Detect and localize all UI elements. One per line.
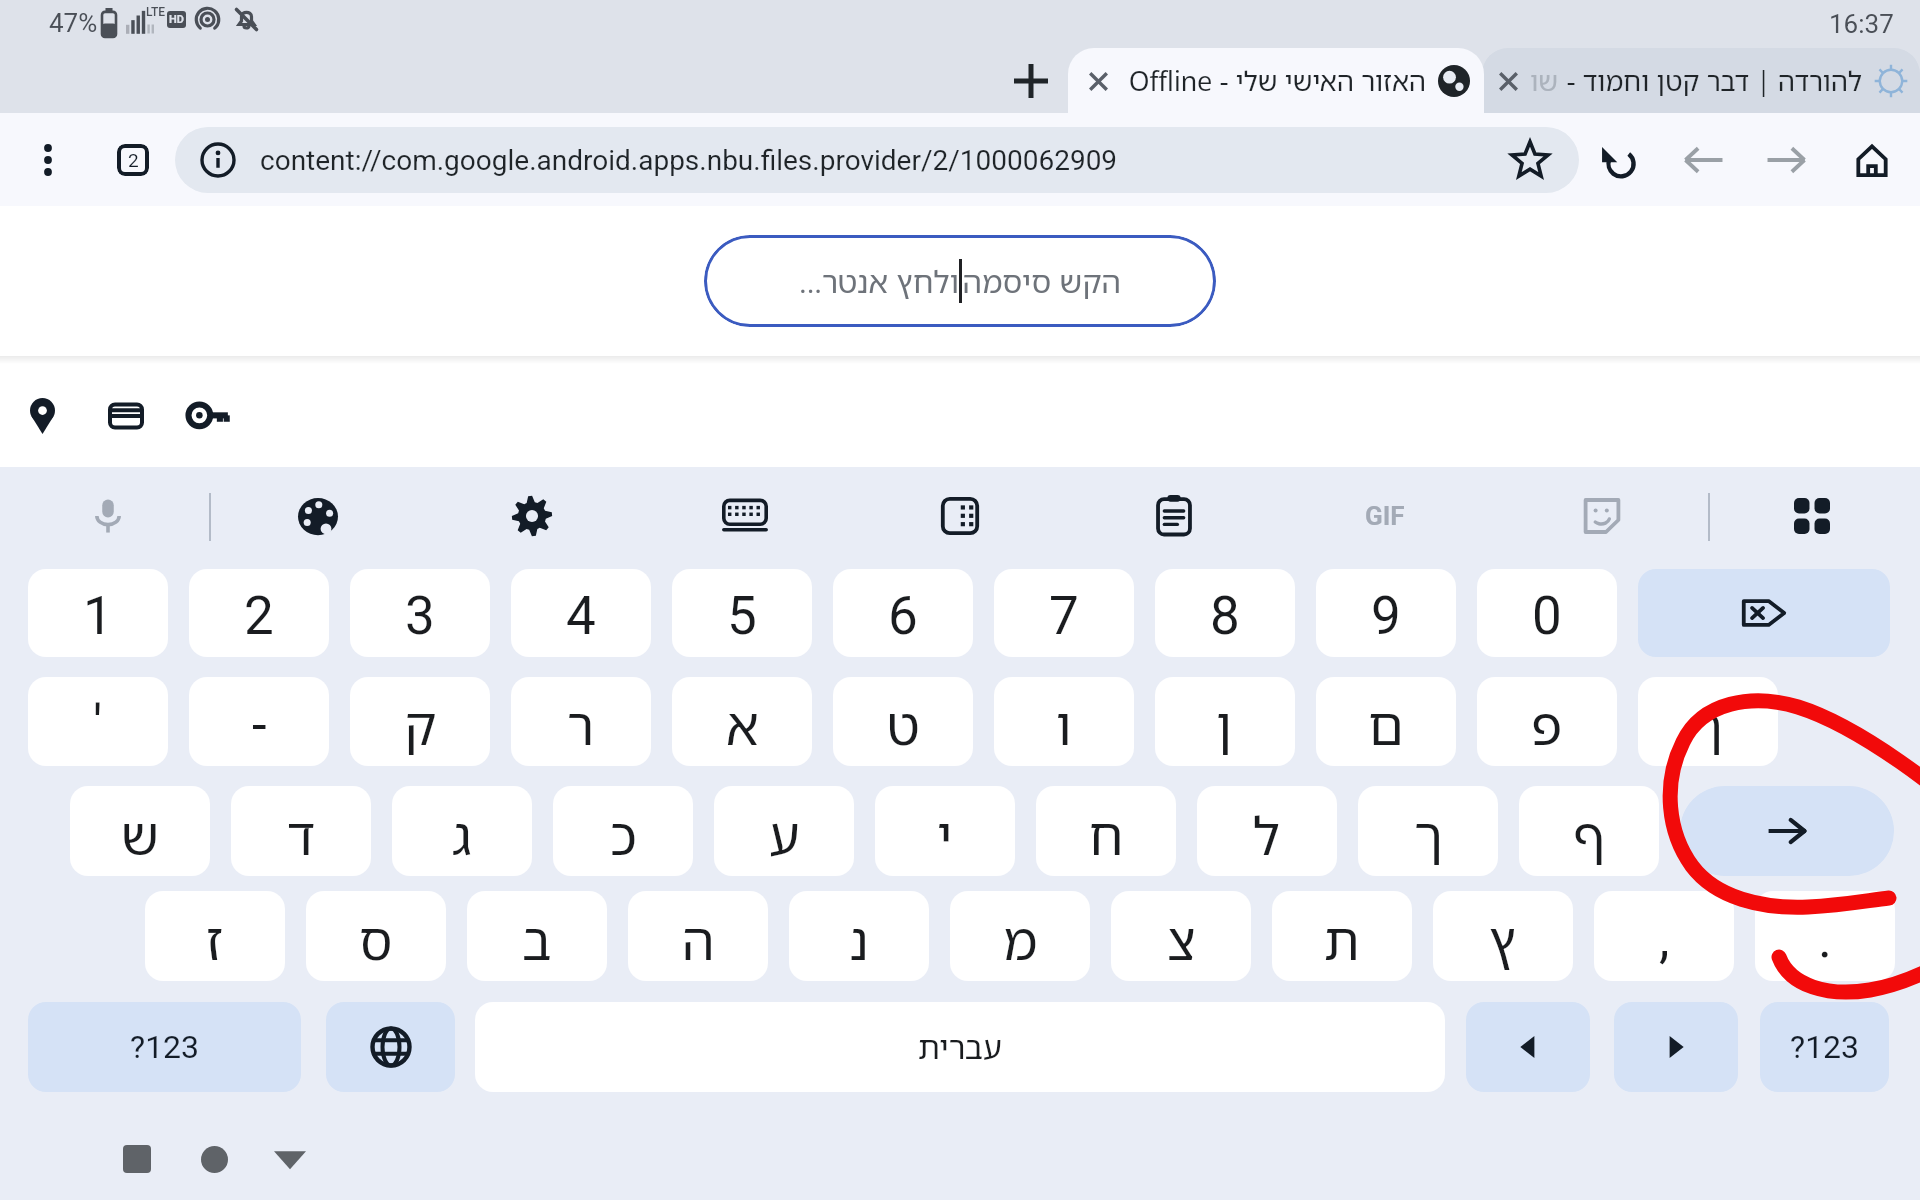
- button[interactable]: ?123: [1760, 1002, 1889, 1092]
- staticText: ג: [452, 799, 472, 870]
- button[interactable]: Floating keyboard: [714, 467, 776, 565]
- button[interactable]: 0: [1477, 569, 1617, 657]
- button[interactable]: Passwords: [180, 386, 240, 446]
- button[interactable]: .: [1755, 891, 1895, 981]
- button[interactable]: Hide keyboard: [260, 1129, 320, 1189]
- button[interactable]: More options: [1782, 467, 1842, 565]
- button[interactable]: 4: [511, 569, 651, 657]
- staticText: 0: [1532, 585, 1562, 647]
- staticText: ך: [1694, 689, 1723, 760]
- staticText: GIF: [1365, 501, 1405, 531]
- button[interactable]: ,: [1594, 891, 1734, 981]
- button[interactable]: Home: [184, 1129, 244, 1189]
- staticText: מ: [1003, 904, 1038, 975]
- button[interactable]: ר: [511, 677, 651, 766]
- button[interactable]: 6: [833, 569, 973, 657]
- button[interactable]: ': [28, 677, 168, 766]
- button[interactable]: ?123: [28, 1002, 301, 1092]
- button[interactable]: ח: [1036, 786, 1176, 876]
- button[interactable]: הקש סיסמה: [704, 235, 1216, 327]
- button[interactable]: ך: [1638, 677, 1778, 766]
- button[interactable]: מ: [950, 891, 1090, 981]
- button[interactable]: ט: [833, 677, 973, 766]
- button[interactable]: Reload: [1589, 113, 1647, 206]
- button[interactable]: צ: [1111, 891, 1251, 981]
- staticText: ,: [1659, 908, 1670, 970]
- button[interactable]: Payment method: [96, 386, 156, 446]
- button[interactable]: ת: [1272, 891, 1412, 981]
- button[interactable]: Address: [12, 386, 72, 446]
- button[interactable]: 5: [672, 569, 812, 657]
- button[interactable]: GIF: [1348, 467, 1422, 565]
- staticText: ק: [404, 689, 437, 760]
- button[interactable]: -: [189, 677, 329, 766]
- button[interactable]: Back: [1675, 113, 1733, 206]
- button[interactable]: א: [672, 677, 812, 766]
- button[interactable]: Bookmark: [1506, 136, 1554, 184]
- button[interactable]: האזור האישי שלי - Offline: [1068, 48, 1484, 113]
- button[interactable]: כ: [553, 786, 693, 876]
- button[interactable]: More options: [19, 113, 77, 206]
- button[interactable]: Stickers: [1572, 467, 1632, 565]
- staticText: ל: [1253, 799, 1281, 870]
- button[interactable]: Settings: [502, 467, 562, 565]
- staticText: 2: [128, 149, 139, 171]
- button[interactable]: ם: [1316, 677, 1456, 766]
- staticText: להורדה | דבר קטן וחמוד -: [1566, 62, 1862, 99]
- staticText: .: [1818, 908, 1832, 970]
- button[interactable]: ה: [628, 891, 768, 981]
- button[interactable]: ז: [145, 891, 285, 981]
- button[interactable]: Home: [1843, 113, 1901, 206]
- button[interactable]: Move cursor left: [1466, 1002, 1590, 1092]
- staticText: ?123: [130, 1028, 200, 1066]
- staticText: ד: [287, 799, 316, 870]
- button[interactable]: י: [875, 786, 1015, 876]
- button[interactable]: Voice input: [78, 467, 138, 565]
- staticText: 7: [1049, 585, 1079, 647]
- button[interactable]: 7: [994, 569, 1134, 657]
- button[interactable]: Move cursor right: [1614, 1002, 1738, 1092]
- button[interactable]: Enter: [1680, 786, 1894, 876]
- staticText: ט: [887, 689, 920, 760]
- staticText: 5: [727, 585, 757, 647]
- button[interactable]: One handed mode: [930, 467, 990, 565]
- button[interactable]: ע: [714, 786, 854, 876]
- button[interactable]: 1: [28, 569, 168, 657]
- button[interactable]: 8: [1155, 569, 1295, 657]
- button[interactable]: נ: [789, 891, 929, 981]
- button[interactable]: ס: [306, 891, 446, 981]
- button[interactable]: Clipboard: [1144, 467, 1204, 565]
- button[interactable]: ף: [1519, 786, 1659, 876]
- staticText: ה: [682, 904, 715, 975]
- button[interactable]: ק: [350, 677, 490, 766]
- button[interactable]: Switch tabs: [104, 113, 162, 206]
- button[interactable]: להורדה | דבר קטן וחמוד -: [1482, 48, 1920, 113]
- button[interactable]: ל: [1197, 786, 1337, 876]
- button[interactable]: פ: [1477, 677, 1617, 766]
- button[interactable]: ש: [70, 786, 210, 876]
- button[interactable]: Recents: [107, 1129, 167, 1189]
- button[interactable]: ץ: [1433, 891, 1573, 981]
- staticText: שו: [1530, 62, 1558, 99]
- staticText: ס: [359, 904, 393, 975]
- staticText: ?123: [1790, 1028, 1860, 1066]
- button[interactable]: ו: [994, 677, 1134, 766]
- button[interactable]: ג: [392, 786, 532, 876]
- button[interactable]: content://com.google.android.apps.nbu.fi…: [175, 127, 1579, 193]
- button[interactable]: Backspace: [1638, 569, 1890, 657]
- button[interactable]: ב: [467, 891, 607, 981]
- button[interactable]: ן: [1155, 677, 1295, 766]
- button[interactable]: Themes: [288, 467, 348, 565]
- button[interactable]: ך: [1358, 786, 1498, 876]
- button[interactable]: עברית: [475, 1002, 1445, 1092]
- staticText: 4: [566, 585, 596, 647]
- button[interactable]: 2: [189, 569, 329, 657]
- button[interactable]: ד: [231, 786, 371, 876]
- button[interactable]: 9: [1316, 569, 1456, 657]
- staticText: 6: [888, 585, 918, 647]
- button[interactable]: Switch language: [326, 1002, 455, 1092]
- button[interactable]: 3: [350, 569, 490, 657]
- button[interactable]: Forward: [1757, 113, 1815, 206]
- staticText: 8: [1210, 585, 1240, 647]
- button[interactable]: New tab: [1000, 50, 1062, 112]
